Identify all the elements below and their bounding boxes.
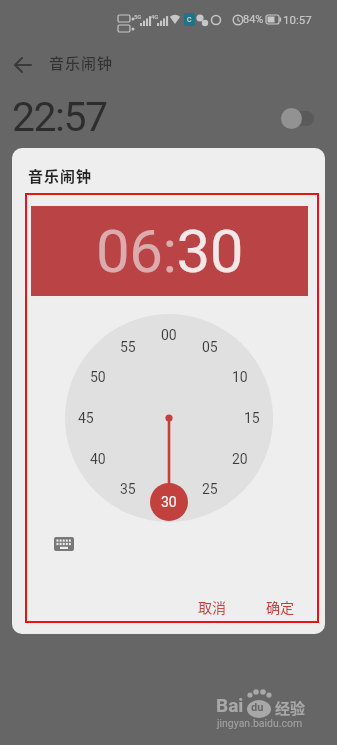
button[interactable] — [6, 49, 38, 81]
staticText: 84% — [243, 13, 264, 26]
staticText: 05 — [202, 339, 218, 355]
staticText: 06:30 — [96, 216, 243, 286]
staticText: 经验 — [275, 697, 306, 719]
staticText: 50 — [90, 369, 106, 385]
staticText: 35 — [120, 481, 136, 497]
staticText: 10:57 — [283, 13, 312, 26]
staticText: 确定 — [266, 597, 294, 617]
staticText: du — [251, 701, 264, 714]
staticText: jingyan.baidu.com — [217, 717, 303, 729]
staticText: 30 — [161, 494, 177, 510]
button[interactable] — [50, 532, 78, 556]
staticText: 音乐闹钟 — [49, 52, 114, 74]
button[interactable] — [281, 105, 317, 133]
staticText: 10 — [232, 369, 248, 385]
staticText: 25 — [202, 481, 218, 497]
staticText: 音乐闹钟 — [28, 165, 93, 187]
staticText: 取消 — [198, 597, 226, 617]
button[interactable]: 30 — [150, 483, 188, 521]
staticText: C — [187, 16, 192, 24]
staticText: 45 — [78, 410, 94, 426]
button[interactable]: 取消 — [142, 577, 282, 634]
staticText: 55 — [120, 339, 136, 355]
staticText: Bai — [216, 694, 244, 716]
staticText: 4G — [151, 13, 159, 20]
staticText: 22:57 — [12, 93, 107, 141]
staticText: 40 — [90, 451, 106, 467]
staticText: 15 — [244, 410, 260, 426]
staticText: 5G — [134, 13, 142, 20]
button[interactable]: 确定 — [210, 577, 325, 634]
staticText: 00 — [161, 327, 177, 343]
staticText: 20 — [232, 451, 248, 467]
